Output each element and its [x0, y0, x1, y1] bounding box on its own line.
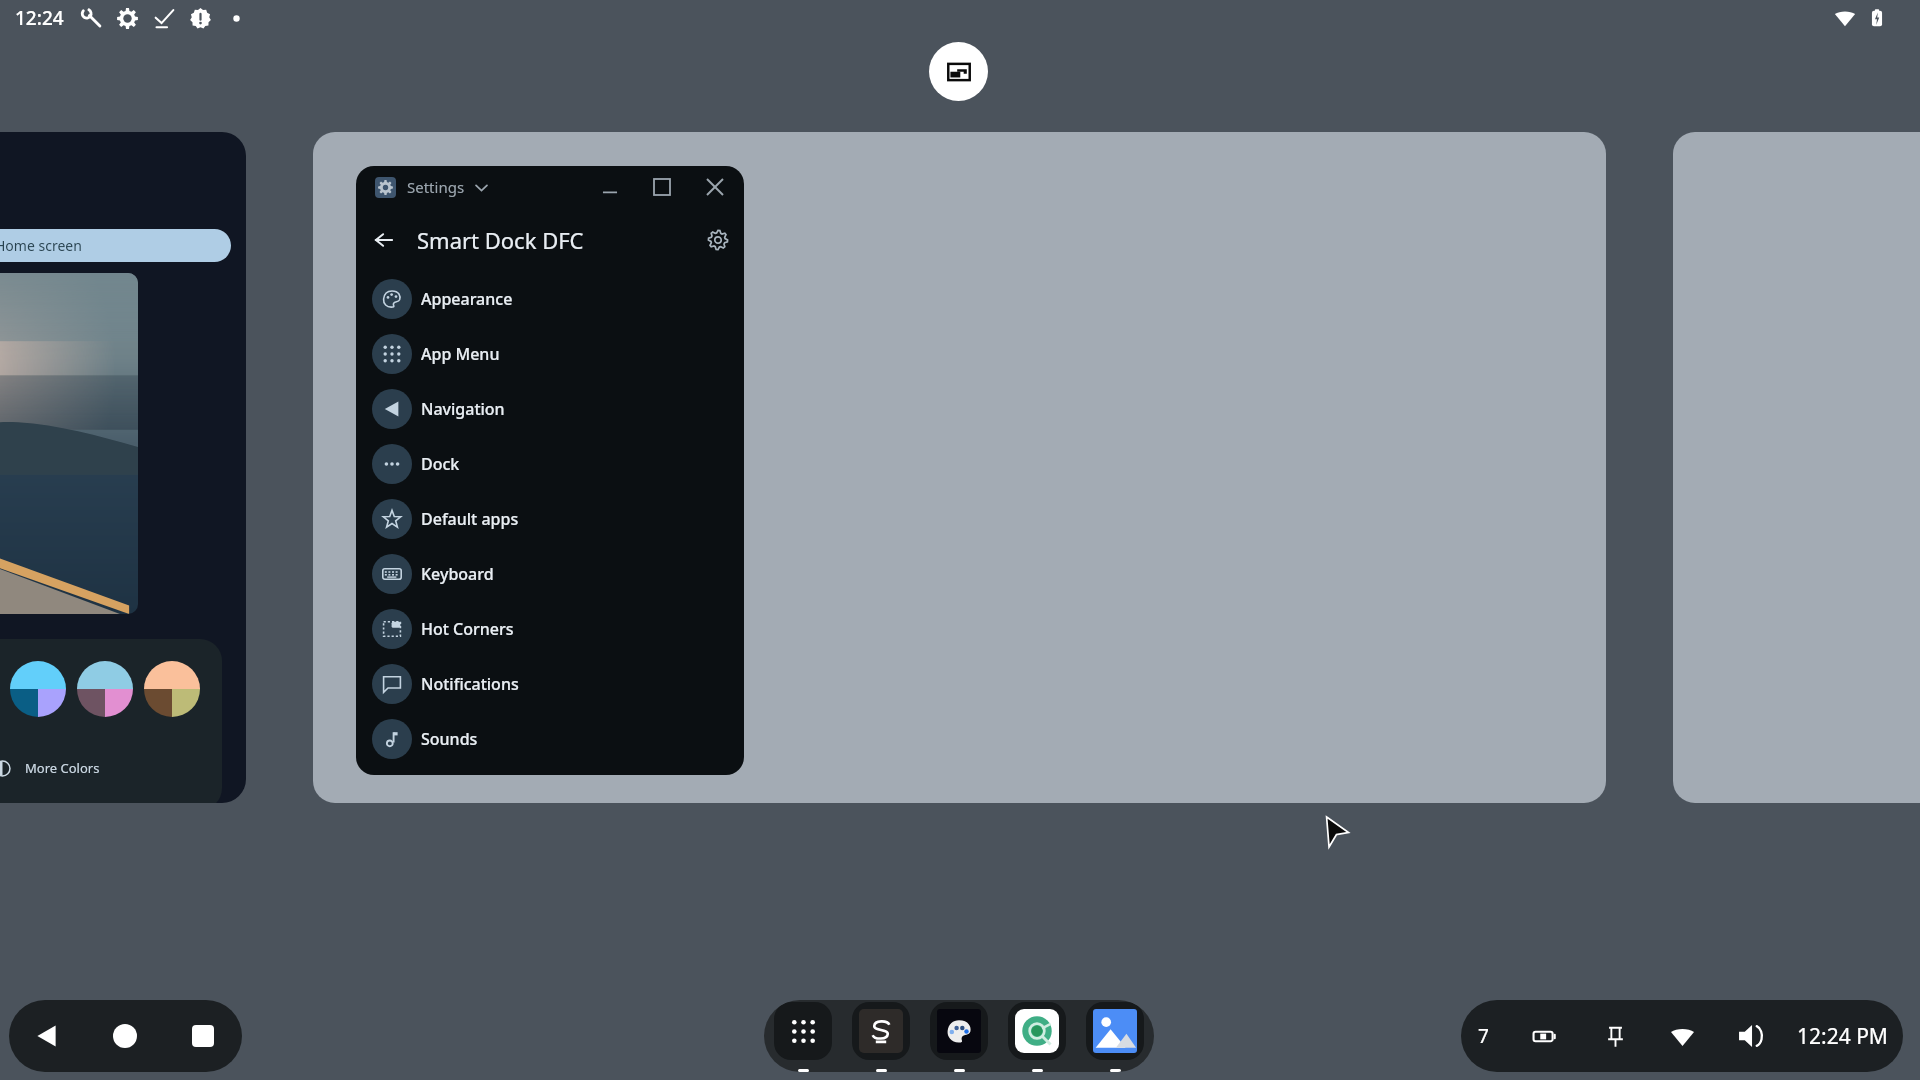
button[interactable]: Appearance — [356, 271, 744, 326]
staticText: Home screen — [0, 236, 82, 255]
staticText: Notifications — [421, 673, 519, 695]
button[interactable]: App 1 — [764, 1000, 842, 1072]
button[interactable]: Maximize — [646, 166, 678, 208]
button[interactable]: Navigation — [356, 381, 744, 436]
button[interactable]: 7 — [1461, 1000, 1903, 1072]
staticText: 12:24 — [15, 5, 64, 31]
button[interactable]: App 3 — [920, 1000, 998, 1072]
button[interactable]: Keyboard — [356, 546, 744, 601]
button[interactable]: Close — [699, 166, 731, 208]
staticText: Default apps — [421, 508, 519, 530]
button[interactable]: More Colors — [0, 759, 100, 777]
button[interactable]: App Menu — [356, 326, 744, 381]
button[interactable]: Default apps — [356, 491, 744, 546]
staticText: App Menu — [421, 343, 500, 365]
button[interactable]: Restore window — [929, 42, 988, 101]
button[interactable]: Back — [23, 1000, 71, 1072]
staticText: Settings — [407, 177, 465, 197]
button[interactable]: App 2 — [842, 1000, 920, 1072]
staticText: Hot Corners — [421, 618, 514, 640]
button[interactable]: Hot Corners — [356, 601, 744, 656]
button[interactable]: Sounds — [356, 711, 744, 766]
staticText: 7 — [1478, 1023, 1489, 1049]
staticText: More Colors — [25, 759, 100, 777]
button[interactable]: Minimize — [594, 166, 626, 208]
staticText: Dock — [421, 453, 460, 475]
button[interactable]: Dock — [356, 436, 744, 491]
button[interactable]: Notifications — [356, 656, 744, 711]
staticText: Navigation — [421, 398, 505, 420]
staticText: 12:24 PM — [1797, 1022, 1888, 1051]
button[interactable]: Recents — [179, 1000, 227, 1072]
staticText: Appearance — [421, 288, 513, 310]
button[interactable]: App 4 — [998, 1000, 1076, 1072]
button[interactable]: Settings — [703, 225, 733, 255]
button[interactable]: Home — [101, 1000, 149, 1072]
button[interactable]: Back — [368, 224, 400, 256]
button[interactable]: Home screen — [0, 229, 231, 262]
button[interactable]: App 5 — [1076, 1000, 1154, 1072]
staticText: Keyboard — [421, 563, 494, 585]
staticText: Sounds — [421, 728, 478, 750]
staticText: Smart Dock DFC — [417, 225, 584, 255]
